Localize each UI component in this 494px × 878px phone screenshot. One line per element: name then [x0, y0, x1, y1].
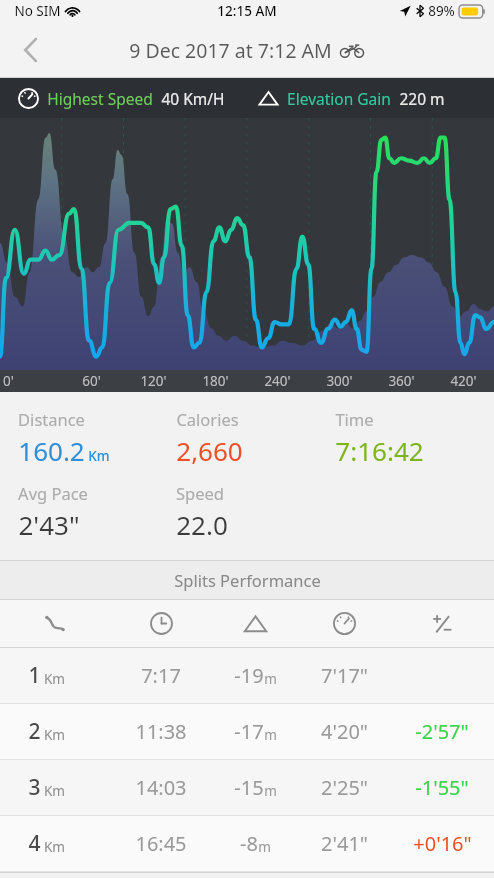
- staticText: 2'43": [18, 507, 80, 542]
- staticText: 2'41": [321, 830, 368, 857]
- staticText: Calories: [176, 408, 239, 430]
- staticText: -17: [234, 718, 264, 745]
- staticText: 2: [28, 717, 41, 746]
- staticText: 7'17": [321, 662, 368, 689]
- staticText: 2'25": [321, 774, 368, 801]
- staticText: -1'55": [415, 774, 469, 801]
- staticText: 16:45: [135, 830, 187, 857]
- staticText: Km: [44, 838, 65, 856]
- other: Time: [150, 612, 173, 635]
- staticText: 0': [3, 372, 14, 390]
- staticText: 160.2: [18, 433, 85, 468]
- staticText: 3: [28, 773, 41, 802]
- staticText: 7:16:42: [335, 433, 424, 468]
- staticText: Distance: [18, 408, 85, 430]
- staticText: No SIM: [14, 2, 61, 20]
- staticText: m: [264, 726, 277, 744]
- staticText: Splits Performance: [174, 569, 321, 591]
- staticText: 220 m: [399, 88, 445, 109]
- staticText: Time: [335, 408, 374, 430]
- staticText: Elevation Gain: [287, 88, 391, 109]
- staticText: 420': [450, 372, 477, 390]
- button[interactable]: 1: [0, 648, 494, 703]
- button[interactable]: 2: [0, 704, 494, 759]
- staticText: 300': [326, 372, 353, 390]
- staticText: 7:17: [141, 662, 181, 689]
- other: Pace: [333, 612, 356, 635]
- staticText: m: [258, 838, 271, 856]
- staticText: 360': [388, 372, 415, 390]
- staticText: 4: [28, 829, 41, 858]
- staticText: 22.0: [176, 507, 228, 542]
- other: Difference: [431, 613, 453, 635]
- staticText: Speed: [176, 482, 224, 504]
- staticText: 9 Dec 2017 at 7:12 AM: [129, 37, 332, 64]
- staticText: 14:03: [135, 774, 187, 801]
- other: Elevation: [243, 614, 268, 634]
- staticText: 11:38: [135, 718, 187, 745]
- staticText: Km: [88, 447, 110, 465]
- other: Split: [44, 615, 66, 632]
- staticText: Highest Speed: [47, 88, 153, 109]
- staticText: m: [264, 670, 277, 688]
- staticText: 180': [202, 372, 229, 390]
- staticText: 240': [264, 372, 291, 390]
- staticText: +0'16": [413, 830, 472, 857]
- button[interactable]: 4: [0, 816, 494, 871]
- staticText: 89%: [428, 2, 455, 20]
- staticText: Avg Pace: [18, 482, 88, 504]
- staticText: m: [264, 782, 277, 800]
- staticText: 120': [140, 372, 167, 390]
- button[interactable]: 3: [0, 760, 494, 815]
- staticText: Km: [44, 726, 65, 744]
- staticText: -8: [240, 830, 258, 857]
- button[interactable]: Back: [8, 28, 52, 72]
- staticText: 2,660: [176, 433, 243, 468]
- staticText: 40 Km/H: [161, 88, 225, 109]
- staticText: -2'57": [415, 718, 469, 745]
- staticText: 12:15 AM: [217, 2, 277, 20]
- staticText: 1: [28, 661, 41, 690]
- staticText: Km: [44, 670, 65, 688]
- staticText: -19: [234, 662, 264, 689]
- staticText: Km: [44, 782, 65, 800]
- staticText: -15: [234, 774, 264, 801]
- staticText: 60': [82, 372, 101, 390]
- staticText: 4'20": [321, 718, 368, 745]
